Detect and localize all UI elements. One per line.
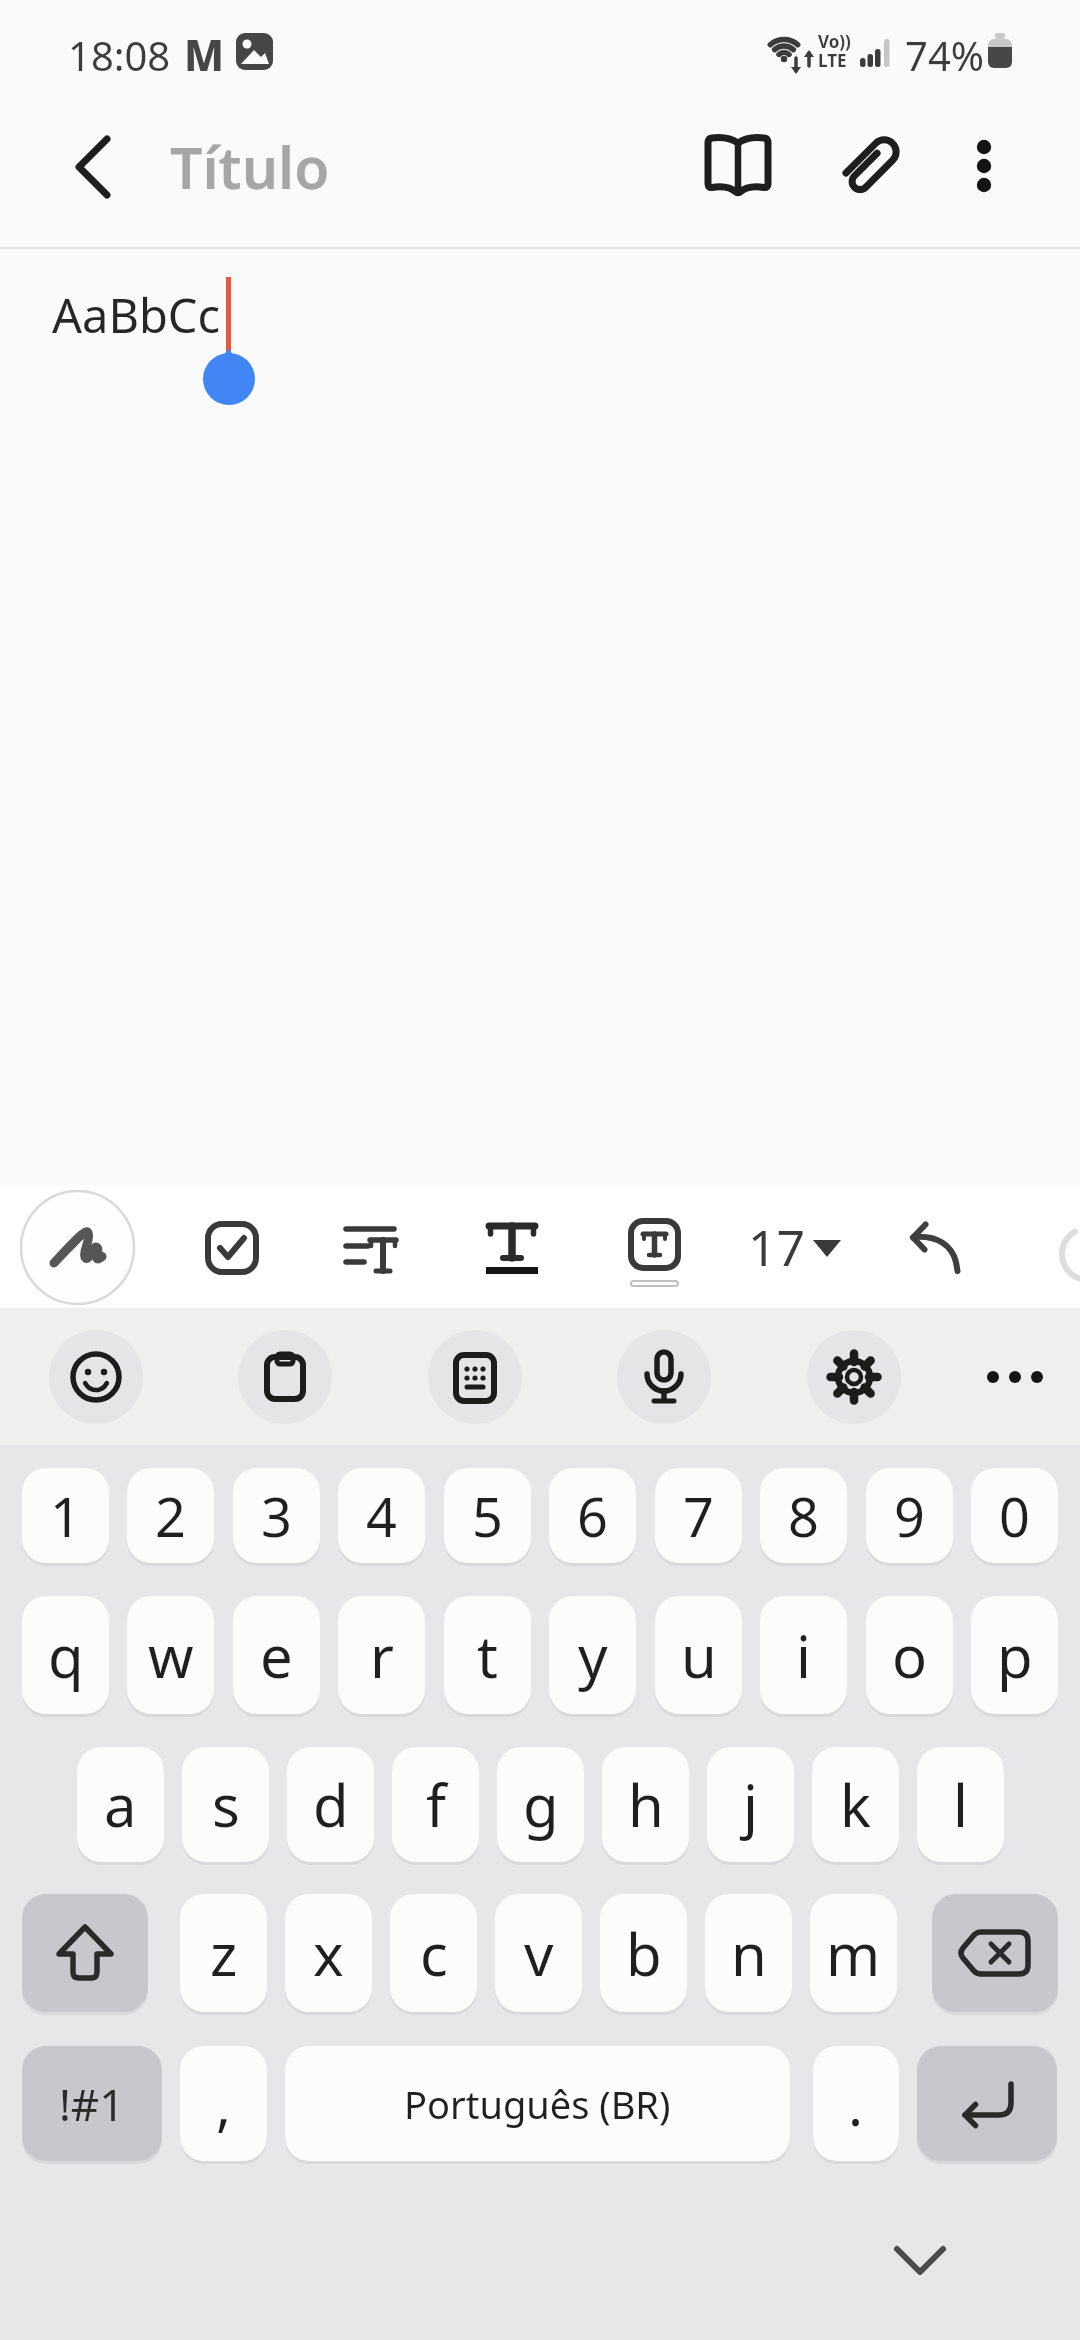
button[interactable] bbox=[948, 128, 1024, 204]
staticText: a bbox=[104, 1765, 137, 1844]
button[interactable]: d bbox=[287, 1747, 374, 1862]
button[interactable]: 3 bbox=[233, 1468, 320, 1563]
button[interactable]: e bbox=[233, 1596, 320, 1714]
staticText: LTE bbox=[818, 49, 847, 72]
button[interactable]: r bbox=[338, 1596, 425, 1714]
staticText: M bbox=[184, 26, 225, 83]
button[interactable]: x bbox=[285, 1894, 372, 2012]
button[interactable] bbox=[20, 1190, 135, 1305]
button[interactable]: g bbox=[497, 1747, 584, 1862]
staticText: r bbox=[370, 1616, 394, 1695]
staticText: k bbox=[840, 1765, 871, 1844]
staticText: g bbox=[523, 1765, 559, 1844]
button[interactable]: m bbox=[810, 1894, 897, 2012]
button[interactable]: h bbox=[602, 1747, 689, 1862]
button[interactable]: . bbox=[813, 2046, 899, 2161]
button[interactable]: 17 bbox=[735, 1210, 855, 1286]
button[interactable]: q bbox=[22, 1596, 109, 1714]
button[interactable]: , bbox=[180, 2046, 267, 2161]
staticText: 9 bbox=[894, 1479, 925, 1553]
button[interactable]: u bbox=[655, 1596, 742, 1714]
button[interactable]: o bbox=[866, 1596, 953, 1714]
staticText: j bbox=[743, 1765, 758, 1844]
button[interactable] bbox=[196, 1212, 267, 1283]
button[interactable] bbox=[476, 1208, 547, 1286]
staticText: q bbox=[48, 1616, 84, 1695]
staticText: 2 bbox=[155, 1479, 186, 1553]
staticText: e bbox=[260, 1616, 293, 1695]
staticText: o bbox=[892, 1616, 928, 1695]
button[interactable]: k bbox=[812, 1747, 899, 1862]
button[interactable] bbox=[618, 1208, 689, 1294]
staticText: Vo)) bbox=[818, 30, 851, 53]
button[interactable]: s bbox=[182, 1747, 269, 1862]
button[interactable]: 9 bbox=[866, 1468, 953, 1563]
staticText: x bbox=[313, 1914, 344, 1993]
button[interactable]: 1 bbox=[22, 1468, 109, 1563]
button[interactable]: l bbox=[917, 1747, 1004, 1862]
staticText: z bbox=[210, 1914, 238, 1993]
button[interactable]: 6 bbox=[549, 1468, 636, 1563]
staticText: Título bbox=[170, 128, 330, 206]
button[interactable]: 7 bbox=[655, 1468, 742, 1563]
staticText: 3 bbox=[261, 1479, 292, 1553]
staticText: v bbox=[524, 1914, 554, 1993]
button[interactable] bbox=[617, 1330, 711, 1424]
staticText: AaBbCc bbox=[52, 283, 221, 347]
button[interactable]: f bbox=[392, 1747, 479, 1862]
staticText: 17 bbox=[748, 1213, 806, 1281]
button[interactable]: !#1 bbox=[22, 2046, 162, 2161]
button[interactable]: z bbox=[180, 1894, 267, 2012]
button[interactable]: 8 bbox=[760, 1468, 847, 1563]
button[interactable]: c bbox=[390, 1894, 477, 2012]
button[interactable] bbox=[22, 1894, 148, 2012]
button[interactable] bbox=[335, 1212, 406, 1283]
button[interactable] bbox=[807, 1330, 901, 1424]
staticText: d bbox=[313, 1765, 349, 1844]
staticText: m bbox=[826, 1914, 881, 1993]
button[interactable]: 0 bbox=[971, 1468, 1058, 1563]
button[interactable]: 5 bbox=[444, 1468, 531, 1563]
button[interactable] bbox=[917, 2046, 1057, 2161]
button[interactable]: j bbox=[707, 1747, 794, 1862]
button[interactable] bbox=[965, 1330, 1065, 1424]
staticText: p bbox=[997, 1616, 1033, 1695]
button[interactable]: w bbox=[127, 1596, 214, 1714]
button[interactable]: y bbox=[549, 1596, 636, 1714]
button[interactable] bbox=[238, 1330, 332, 1424]
staticText: c bbox=[420, 1914, 448, 1993]
button[interactable]: p bbox=[971, 1596, 1058, 1714]
button[interactable] bbox=[832, 128, 908, 204]
button[interactable]: v bbox=[495, 1894, 582, 2012]
staticText: 18:08 bbox=[68, 28, 171, 82]
button[interactable] bbox=[56, 130, 132, 206]
button[interactable]: a bbox=[77, 1747, 164, 1862]
staticText: 4 bbox=[366, 1479, 397, 1553]
button[interactable]: 2 bbox=[127, 1468, 214, 1563]
staticText: . bbox=[848, 2066, 864, 2142]
staticText: 1 bbox=[50, 1479, 81, 1553]
staticText: 6 bbox=[577, 1479, 608, 1553]
staticText: w bbox=[148, 1616, 194, 1695]
button[interactable] bbox=[700, 128, 776, 204]
button[interactable]: i bbox=[760, 1596, 847, 1714]
staticText: 0 bbox=[999, 1479, 1030, 1553]
button[interactable]: 4 bbox=[338, 1468, 425, 1563]
staticText: 5 bbox=[472, 1479, 503, 1553]
staticText: f bbox=[426, 1765, 446, 1844]
button[interactable]: t bbox=[444, 1596, 531, 1714]
button[interactable] bbox=[49, 1330, 143, 1424]
button[interactable] bbox=[428, 1330, 522, 1424]
button[interactable]: b bbox=[600, 1894, 687, 2012]
button[interactable]: Português (BR) bbox=[285, 2046, 790, 2161]
button[interactable] bbox=[893, 1210, 977, 1290]
button[interactable] bbox=[932, 1894, 1058, 2012]
button[interactable]: n bbox=[705, 1894, 792, 2012]
staticText: , bbox=[216, 2066, 232, 2142]
staticText: u bbox=[681, 1616, 717, 1695]
button[interactable] bbox=[870, 2220, 970, 2310]
staticText: s bbox=[212, 1765, 240, 1844]
staticText: Português (BR) bbox=[404, 2078, 671, 2130]
staticText: y bbox=[578, 1616, 608, 1695]
staticText: i bbox=[796, 1616, 811, 1695]
